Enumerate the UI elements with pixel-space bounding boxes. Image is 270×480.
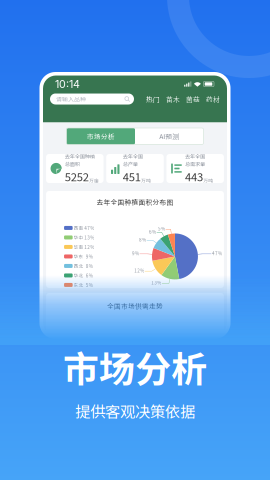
staticText: 6% [86, 272, 93, 279]
staticText: 华东 [74, 253, 84, 260]
staticText: 8% [86, 263, 93, 269]
staticText: 总产量 [123, 160, 138, 168]
button[interactable]: AI预测 [135, 128, 203, 144]
staticText: 请输入品种 [56, 95, 86, 103]
staticText: 47% [212, 250, 222, 256]
staticText: 6% [149, 228, 156, 235]
staticText: 万吨 [203, 177, 213, 184]
staticText: 8% [139, 236, 146, 243]
staticText: 5% [158, 225, 165, 232]
button[interactable]: 去年全国 [166, 154, 224, 183]
staticText: 东北 [74, 282, 84, 288]
staticText: 华中 [74, 234, 84, 241]
staticText: 5252 [65, 168, 89, 185]
staticText: 热门 [146, 94, 160, 104]
staticText: 市场分析 [63, 341, 207, 393]
staticText: 万亩 [89, 177, 99, 184]
staticText: 12% [84, 244, 94, 250]
staticText: 市场分析 [87, 131, 115, 141]
button[interactable]: 市场分析 [66, 128, 135, 144]
staticText: 提供客观决策依据 [75, 400, 195, 422]
staticText: 去年全国 [123, 152, 143, 160]
staticText: 12% [134, 267, 144, 274]
staticText: 苗木 [166, 94, 180, 104]
staticText: 443 [185, 168, 203, 185]
staticText: 药材 [206, 94, 220, 104]
staticText: 总面积 [65, 160, 80, 168]
staticText: 全国市场供需走势 [107, 301, 163, 311]
staticText: 去年全国种植 [65, 152, 95, 160]
staticText: 9% [86, 253, 93, 260]
button[interactable]: 去年全国种植 [46, 154, 103, 183]
button[interactable]: 去年全国 [106, 154, 164, 183]
staticText: 西南 [74, 225, 84, 231]
staticText: 菌菇 [186, 94, 200, 104]
staticText: 华南 [74, 244, 84, 250]
staticText: 47% [84, 225, 94, 231]
staticText: 去年全国 [185, 152, 205, 160]
staticText: 13% [151, 279, 161, 286]
staticText: 451 [123, 168, 141, 185]
staticText: 13% [84, 234, 94, 241]
staticText: 10:14 [55, 77, 80, 90]
staticText: AI预测 [159, 131, 179, 141]
staticText: 去年全国种植面积分布图 [96, 197, 173, 207]
staticText: 总需求量 [185, 160, 205, 168]
staticText: 9% [132, 250, 139, 256]
staticText: 5% [86, 282, 93, 288]
staticText: 西北 [74, 263, 84, 269]
staticText: 华北 [74, 272, 84, 279]
staticText: 万吨 [141, 177, 151, 184]
